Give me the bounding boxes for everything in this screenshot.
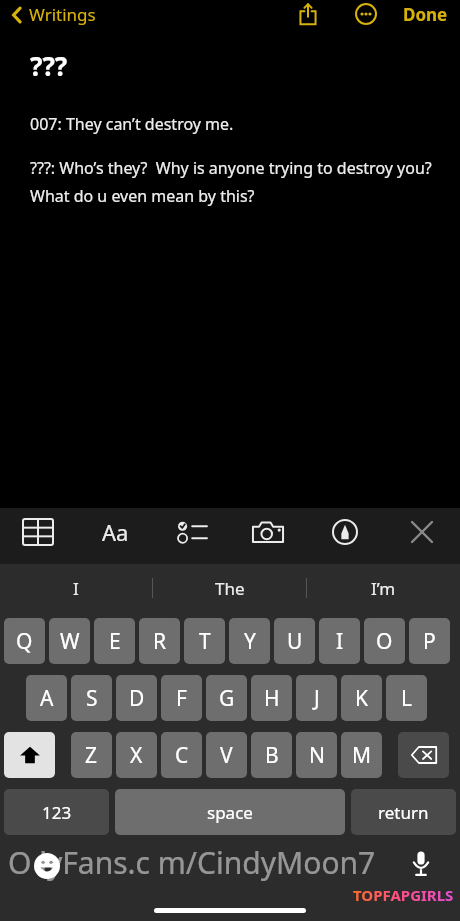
staticText: O	[376, 627, 393, 656]
button[interactable]: 123	[4, 789, 109, 835]
button[interactable]: V	[206, 732, 247, 778]
button[interactable]: S	[71, 675, 112, 721]
staticText: S	[86, 684, 98, 713]
staticText: Writings	[29, 3, 96, 26]
button[interactable]: Share	[291, 0, 325, 28]
staticText: ???: Who’s they? Why is anyone trying to…	[30, 157, 438, 207]
button[interactable]: Backspace	[398, 732, 449, 778]
button[interactable]: N	[296, 732, 337, 778]
button[interactable]: Done	[401, 3, 450, 26]
staticText: I	[336, 627, 344, 656]
button[interactable]: B	[251, 732, 292, 778]
staticText: Y	[244, 627, 256, 656]
button[interactable]: Close keyboard	[396, 508, 448, 556]
button[interactable]: Text format	[89, 508, 141, 556]
button[interactable]: return	[351, 789, 456, 835]
staticText: J	[314, 684, 320, 713]
button[interactable]: R	[139, 618, 180, 664]
staticText: A	[40, 684, 54, 713]
staticText: O lyFans.c m/CindyMoon7	[8, 842, 376, 883]
staticText: TOPFAPGIRLS	[353, 885, 454, 905]
staticText: Aa	[102, 517, 129, 547]
button[interactable]: Checklist	[166, 508, 218, 556]
staticText: B	[265, 741, 279, 770]
staticText: I’m	[371, 577, 396, 600]
staticText: space	[207, 801, 253, 824]
button[interactable]: space	[115, 789, 345, 835]
button[interactable]: I	[319, 618, 360, 664]
button[interactable]: Q	[4, 618, 45, 664]
button[interactable]: Dictation	[404, 847, 438, 881]
staticText: R	[153, 627, 167, 656]
staticText: Done	[403, 3, 448, 26]
button[interactable]: I’m	[307, 564, 460, 612]
button[interactable]: G	[206, 675, 247, 721]
staticText: C	[175, 741, 189, 770]
button[interactable]: I	[0, 564, 152, 612]
staticText: ???	[30, 48, 68, 83]
button[interactable]: C	[161, 732, 202, 778]
button[interactable]: T	[184, 618, 225, 664]
staticText: P	[423, 627, 436, 656]
button[interactable]: J	[296, 675, 337, 721]
staticText: Z	[85, 741, 98, 770]
button[interactable]: U	[274, 618, 315, 664]
button[interactable]: L	[386, 675, 427, 721]
button[interactable]: Markup	[319, 508, 371, 556]
button[interactable]: Z	[71, 732, 112, 778]
staticText: F	[176, 684, 187, 713]
staticText: N	[309, 741, 325, 770]
staticText: E	[109, 627, 121, 656]
staticText: V	[220, 741, 233, 770]
staticText: T	[199, 627, 211, 656]
staticText: L	[401, 684, 413, 713]
button[interactable]: More options	[349, 0, 383, 28]
button[interactable]: Writings	[8, 3, 98, 26]
button[interactable]: Y	[229, 618, 270, 664]
staticText: W	[60, 627, 80, 656]
button[interactable]: D	[116, 675, 157, 721]
button[interactable]: The	[153, 564, 306, 612]
button[interactable]: K	[341, 675, 382, 721]
staticText: I	[73, 577, 79, 600]
button[interactable]: Emoji	[30, 849, 64, 883]
staticText: H	[264, 684, 280, 713]
button[interactable]: Camera	[242, 508, 294, 556]
staticText: X	[130, 741, 143, 770]
staticText: return	[378, 801, 429, 824]
button[interactable]: O	[364, 618, 405, 664]
button[interactable]: M	[341, 732, 382, 778]
staticText: U	[287, 627, 303, 656]
button[interactable]: A	[26, 675, 67, 721]
button[interactable]: P	[409, 618, 450, 664]
button[interactable]: H	[251, 675, 292, 721]
staticText: 007: They can’t destroy me.	[30, 113, 234, 135]
staticText: G	[219, 684, 235, 713]
staticText: M	[352, 741, 372, 770]
staticText: Q	[16, 627, 33, 656]
button[interactable]: E	[94, 618, 135, 664]
staticText: 123	[42, 801, 72, 824]
button[interactable]: X	[116, 732, 157, 778]
staticText: D	[129, 684, 145, 713]
button[interactable]: W	[49, 618, 90, 664]
staticText: K	[355, 684, 368, 713]
button[interactable]: Table	[12, 508, 64, 556]
button[interactable]: Shift	[4, 732, 55, 778]
staticText: The	[215, 577, 245, 600]
button[interactable]: F	[161, 675, 202, 721]
